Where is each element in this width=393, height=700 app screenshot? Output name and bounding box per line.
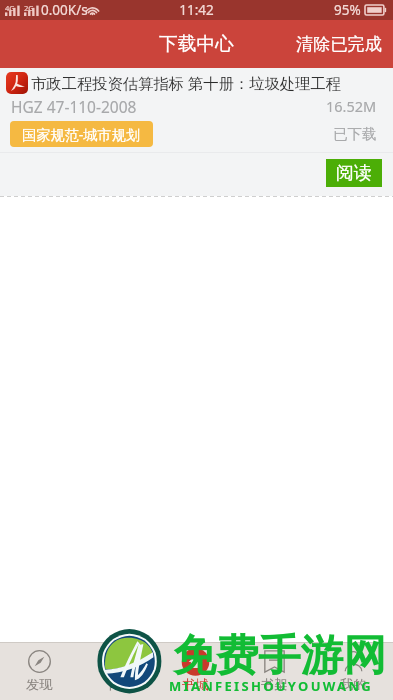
- staticText: 95%: [334, 1, 361, 19]
- staticText: 我的: [340, 676, 367, 693]
- button[interactable]: 发现: [0, 643, 78, 700]
- button[interactable]: 书架: [235, 643, 314, 700]
- button[interactable]: 我的: [314, 643, 393, 700]
- staticText: 发现: [26, 676, 53, 693]
- staticText: 16.52M: [326, 96, 377, 114]
- staticText: 已下载: [333, 125, 377, 143]
- button[interactable]: 阅读: [326, 159, 382, 187]
- staticText: 11:42: [0, 1, 393, 19]
- staticText: 4G: [5, 3, 15, 13]
- staticText: 书城: [182, 676, 209, 693]
- button[interactable]: 书城: [156, 643, 235, 700]
- staticText: 市政工程投资估算指标 第十册：垃圾处理工程: [31, 73, 341, 94]
- staticText: 免费手游网: [173, 629, 386, 683]
- button[interactable]: 市政工程投资估算指标 第十册：垃圾处理工程: [0, 68, 393, 196]
- staticText: 下载中心: [159, 32, 234, 56]
- staticText: 2G: [24, 3, 34, 13]
- staticText: HGZ 47-110-2008: [11, 96, 137, 114]
- staticText: 清除已完成: [296, 33, 382, 55]
- staticText: 下载: [104, 676, 131, 693]
- staticText: MIANFEISHOUYOUWANG: [169, 677, 373, 695]
- button[interactable]: 下载: [78, 643, 156, 700]
- button[interactable]: 清除已完成: [285, 21, 393, 67]
- staticText: 阅读: [336, 162, 372, 185]
- staticText: 国家规范-城市规划: [22, 125, 141, 144]
- staticText: 0.00K/s: [41, 1, 88, 19]
- staticText: 书架: [261, 676, 288, 693]
